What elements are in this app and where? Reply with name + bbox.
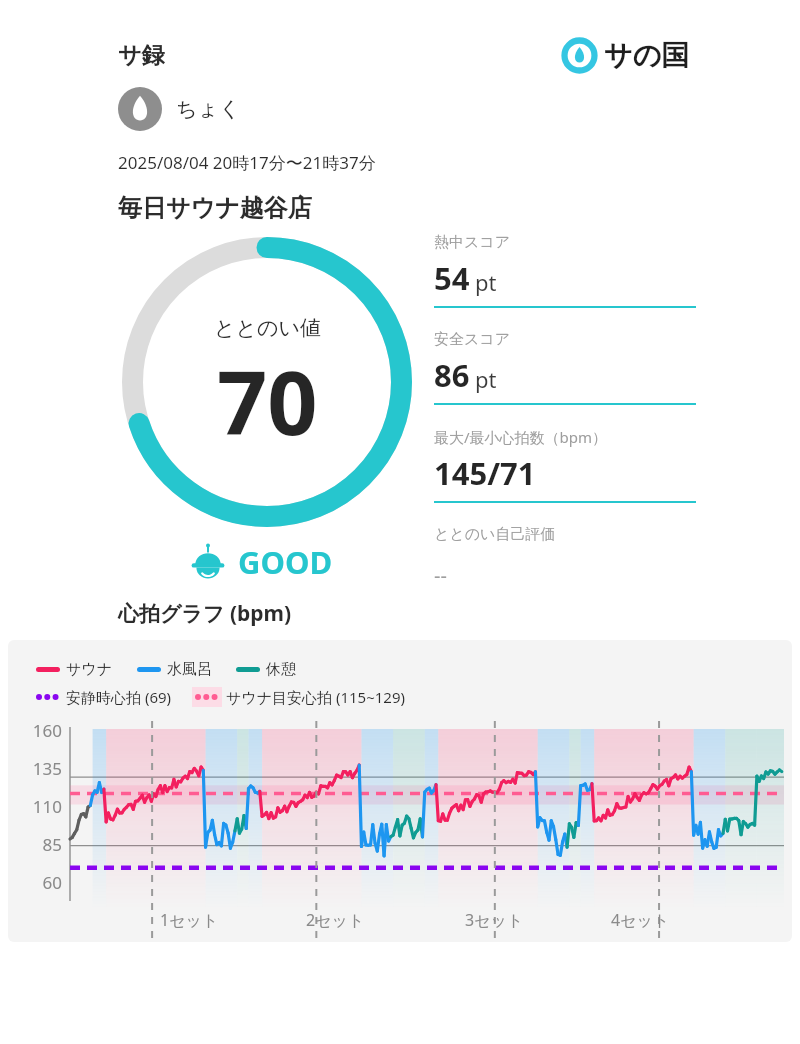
staticText: 1セット	[160, 909, 219, 931]
button[interactable]: ととのい自己評価	[434, 525, 696, 599]
button[interactable]: 安全スコア	[434, 330, 696, 427]
staticText: 160	[8, 719, 62, 742]
staticText: 54	[434, 257, 470, 299]
staticText: 2セット	[306, 909, 365, 931]
button[interactable]: サの国 home	[563, 38, 690, 73]
staticText: サの国	[604, 38, 690, 73]
staticText: 110	[8, 795, 62, 818]
staticText: 安静時心拍 (69)	[66, 687, 172, 707]
staticText: 熱中スコア	[434, 233, 511, 252]
staticText: サウナ目安心拍 (115~129)	[226, 687, 406, 707]
staticText: 85	[8, 833, 62, 856]
staticText: --	[434, 562, 447, 589]
staticText: ちょく	[176, 96, 241, 122]
staticText: pt	[475, 267, 497, 297]
staticText: pt	[475, 364, 497, 394]
other: GOOD rating	[188, 542, 228, 582]
staticText: 毎日サウナ越谷店	[118, 193, 312, 223]
staticText: 60	[8, 871, 62, 894]
staticText: 86	[434, 354, 470, 396]
staticText: 145/71	[434, 452, 536, 494]
staticText: 最大/最小心拍数（bpm）	[434, 427, 608, 447]
button[interactable]: ととのい値	[122, 237, 412, 527]
button[interactable]: 熱中スコア	[434, 233, 696, 330]
staticText: 2025/08/04 20時17分〜21時37分	[118, 151, 376, 174]
staticText: サウナ	[66, 660, 113, 679]
staticText: 休憩	[266, 660, 296, 679]
staticText: GOOD	[238, 541, 333, 583]
staticText: 水風呂	[167, 660, 212, 679]
staticText: ととのい値	[214, 315, 321, 341]
staticText: 3セット	[465, 909, 524, 931]
staticText: 70	[217, 341, 318, 461]
staticText: サ録	[118, 41, 165, 70]
staticText: 4セット	[611, 909, 670, 931]
staticText: 心拍グラフ (bpm)	[118, 599, 292, 628]
staticText: 135	[8, 757, 62, 780]
button[interactable]: ちょく	[118, 87, 241, 131]
staticText: 安全スコア	[434, 330, 511, 349]
staticText: ととのい自己評価	[434, 525, 556, 544]
button[interactable]: GOOD rating	[188, 541, 333, 583]
button[interactable]: 最大/最小心拍数（bpm）	[434, 427, 696, 525]
button[interactable]: サウナ	[8, 640, 792, 942]
